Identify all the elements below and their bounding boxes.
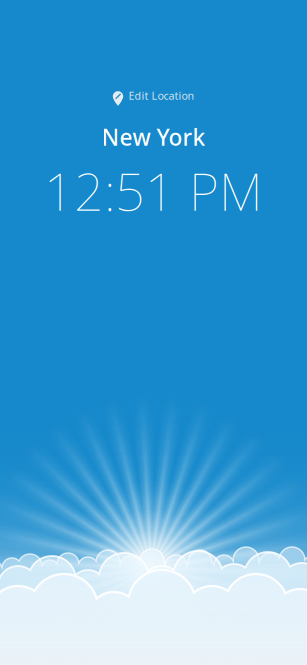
staticText: Edit Location bbox=[128, 88, 194, 103]
staticText: New York bbox=[101, 122, 205, 152]
staticText: 12:51 PM bbox=[44, 156, 263, 225]
button[interactable]: Edit Location bbox=[112, 88, 194, 103]
